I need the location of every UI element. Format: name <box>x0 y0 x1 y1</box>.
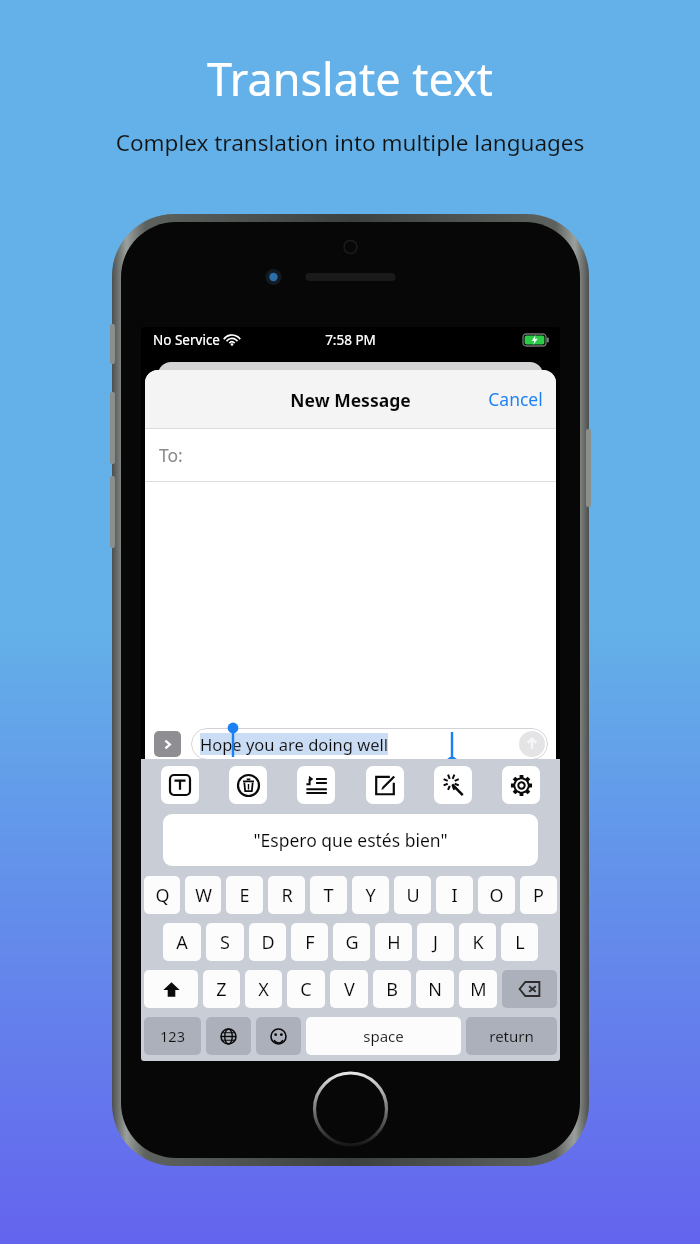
button[interactable]: Y <box>352 876 389 914</box>
staticText: To: <box>159 443 183 467</box>
button[interactable]: T <box>310 876 347 914</box>
staticText: Complex translation into multiple langua… <box>0 127 700 158</box>
button[interactable]: D <box>249 923 286 961</box>
staticText: J <box>433 930 438 955</box>
button[interactable]: R <box>268 876 305 914</box>
staticText: space <box>363 1026 404 1046</box>
button[interactable]: P <box>520 876 557 914</box>
staticText: Hope you are doing well <box>200 733 388 755</box>
staticText: W <box>195 883 212 908</box>
button[interactable]: G <box>333 923 370 961</box>
button[interactable]: space <box>306 1017 461 1055</box>
staticText: Q <box>155 883 170 908</box>
staticText: Cancel <box>488 387 543 411</box>
staticText: S <box>220 930 230 955</box>
button[interactable]: I <box>436 876 473 914</box>
staticText: P <box>533 883 544 908</box>
button[interactable]: Cancel <box>475 379 556 419</box>
staticText: G <box>345 930 359 955</box>
button[interactable]: Z <box>203 970 240 1008</box>
button[interactable]: M <box>459 970 497 1008</box>
button[interactable]: K <box>459 923 496 961</box>
staticText: R <box>281 883 293 908</box>
button[interactable]: S <box>206 923 244 961</box>
staticText: X <box>258 977 269 1002</box>
staticText: K <box>472 930 484 955</box>
button[interactable]: E <box>226 876 263 914</box>
button[interactable]: Translate <box>434 766 472 804</box>
button[interactable]: Insert <box>297 766 335 804</box>
staticText: New Message <box>290 388 411 412</box>
button[interactable]: C <box>287 970 325 1008</box>
staticText: Y <box>365 883 376 908</box>
button[interactable]: F <box>291 923 328 961</box>
button[interactable]: Settings <box>502 766 540 804</box>
button[interactable]: X <box>245 970 282 1008</box>
button[interactable]: Compose <box>366 766 404 804</box>
button[interactable]: Text style <box>161 766 199 804</box>
staticText: D <box>261 930 275 955</box>
button[interactable]: W <box>185 876 221 914</box>
staticText: I <box>451 883 458 908</box>
staticText: T <box>323 883 334 908</box>
staticText: A <box>176 930 188 955</box>
button[interactable]: Expand apps <box>154 731 181 757</box>
button[interactable]: Hope you are doing well <box>191 728 548 760</box>
staticText: V <box>344 977 355 1002</box>
staticText: return <box>489 1026 534 1046</box>
button[interactable]: return <box>466 1017 557 1055</box>
staticText: N <box>428 977 442 1002</box>
staticText: H <box>387 930 401 955</box>
button[interactable]: Delete <box>229 766 267 804</box>
staticText: L <box>515 930 525 955</box>
staticText: B <box>386 977 398 1002</box>
staticText: 7:58 PM <box>325 331 376 349</box>
staticText: M <box>470 977 487 1002</box>
button[interactable]: U <box>394 876 431 914</box>
button[interactable]: J <box>417 923 454 961</box>
button[interactable]: Emoji <box>256 1017 301 1055</box>
button[interactable]: O <box>478 876 515 914</box>
button[interactable]: 123 <box>144 1017 201 1055</box>
button[interactable]: Q <box>144 876 180 914</box>
button[interactable]: A <box>163 923 201 961</box>
button[interactable]: "Espero que estés bien" <box>163 814 538 866</box>
button[interactable]: Backspace <box>502 970 557 1008</box>
staticText: O <box>489 883 504 908</box>
staticText: E <box>239 883 250 908</box>
button[interactable]: Shift <box>144 970 198 1008</box>
button[interactable]: B <box>373 970 411 1008</box>
staticText: F <box>305 930 315 955</box>
button[interactable]: L <box>501 923 538 961</box>
button[interactable]: Send <box>519 731 545 757</box>
staticText: Z <box>216 977 227 1002</box>
staticText: No Service <box>153 331 220 349</box>
button[interactable]: Change keyboard <box>206 1017 251 1055</box>
staticText: 123 <box>160 1026 185 1046</box>
staticText: Translate text <box>0 48 700 109</box>
button[interactable]: N <box>416 970 454 1008</box>
staticText: C <box>300 977 312 1002</box>
staticText: "Espero que estés bien" <box>253 828 448 852</box>
button[interactable]: H <box>375 923 412 961</box>
staticText: U <box>406 883 420 908</box>
button[interactable]: V <box>330 970 368 1008</box>
